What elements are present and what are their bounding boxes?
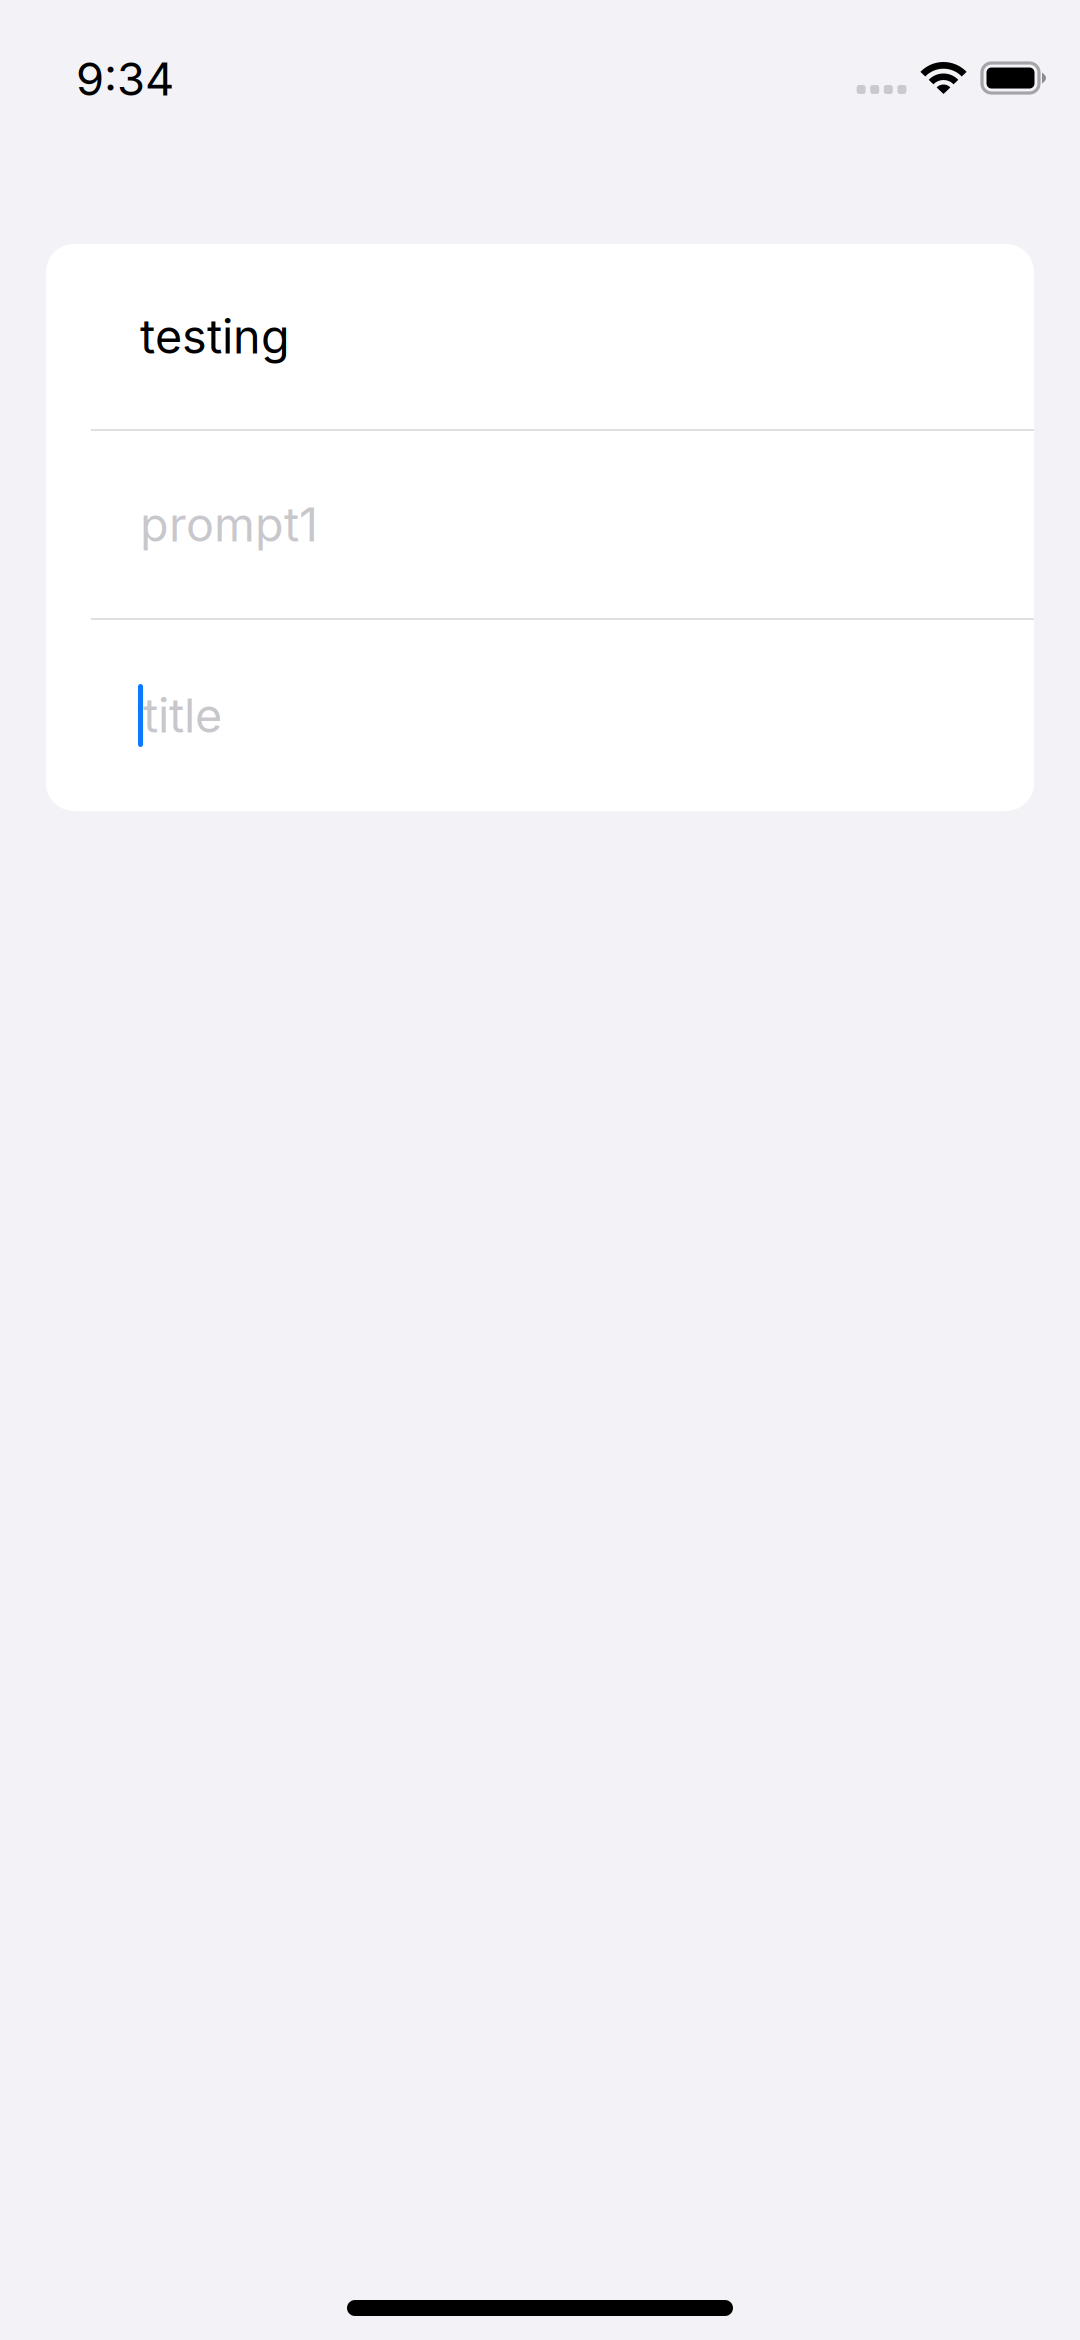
button[interactable]: title [46, 620, 1034, 811]
button[interactable]: testing [46, 244, 1034, 429]
staticText: prompt1 [140, 496, 318, 553]
button[interactable]: prompt1 [46, 431, 1034, 618]
staticText: title [143, 687, 222, 744]
staticText: 9:34 [76, 52, 174, 106]
staticText: testing [140, 308, 290, 365]
